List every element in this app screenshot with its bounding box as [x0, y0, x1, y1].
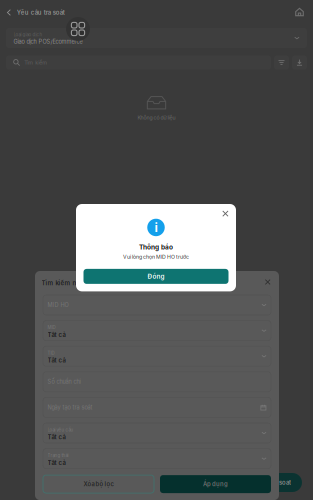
staticText: i [154, 220, 157, 235]
staticText: Tất cả [47, 433, 65, 441]
staticText: TID [47, 350, 54, 356]
staticText: Tất cả [47, 459, 65, 466]
staticText: Loại giao dịch [13, 32, 42, 37]
staticText: Tìm kiếm [24, 59, 47, 66]
staticText: Tìm kiếm nâng cao [41, 279, 102, 287]
staticText: Vui lòng chọn MID HO trước [123, 254, 189, 260]
staticText: Đóng [147, 272, 164, 280]
staticText: Loại yêu cầu [47, 427, 73, 432]
staticText: Không có dữ liệu [137, 114, 175, 121]
button[interactable]: Tạo tra soát [249, 473, 302, 492]
button[interactable]: Export [292, 55, 307, 69]
staticText: Thông báo [139, 243, 173, 251]
staticText: Ngày tạo tra soát [47, 404, 92, 411]
button[interactable]: Close filters [263, 278, 272, 288]
staticText: Trạng thái [47, 453, 68, 458]
button[interactable]: Yêu cầu tra soát [0, 3, 65, 20]
staticText: MID HO [47, 302, 68, 308]
button[interactable]: Close [220, 208, 230, 219]
staticText: Yêu cầu tra soát [17, 9, 65, 16]
staticText: Số chuẩn chi [47, 378, 80, 385]
staticText: MID [47, 325, 55, 330]
button[interactable]: Filter [274, 55, 289, 69]
staticText: Tất cả [47, 331, 65, 338]
staticText: Xóa bộ lọc [83, 481, 113, 488]
button[interactable]: Đóng [83, 269, 228, 284]
staticText: Giao dịch POS/Ecommerce [13, 38, 82, 45]
staticText: Tạo tra soát [260, 479, 291, 486]
button[interactable]: Home [295, 2, 313, 20]
staticText: Áp dụng [203, 481, 228, 488]
staticText: Tất cả [47, 357, 65, 364]
button[interactable]: Áp dụng [160, 475, 271, 493]
button[interactable]: Xóa bộ lọc [43, 475, 154, 493]
